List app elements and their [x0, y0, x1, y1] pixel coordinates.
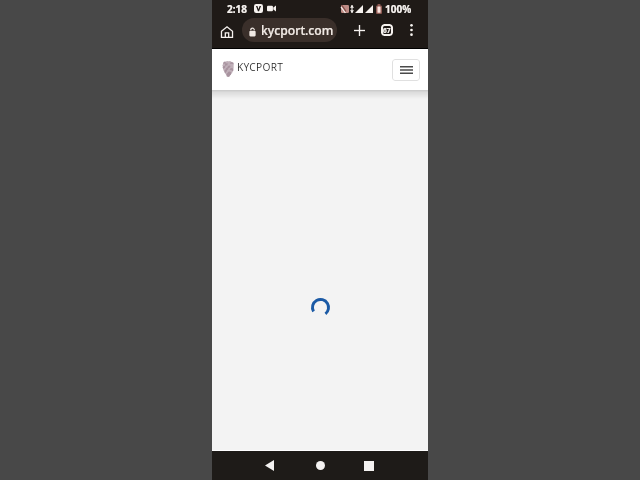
- button[interactable]: Open tabs: [376, 19, 398, 41]
- staticText: KYCPORT: [237, 60, 284, 74]
- button[interactable]: Home page: [219, 15, 234, 45]
- button[interactable]: Home: [307, 451, 333, 480]
- button[interactable]: Recent apps: [356, 451, 382, 480]
- staticText: kycport.com: [261, 22, 334, 39]
- staticText: 2:18: [227, 2, 247, 16]
- button[interactable]: KYCPORT: [223, 62, 284, 76]
- button[interactable]: Back: [256, 451, 282, 480]
- button[interactable]: New tab: [348, 19, 370, 41]
- button[interactable]: More options: [403, 19, 419, 41]
- staticText: 100%: [385, 2, 412, 16]
- staticText: 67: [383, 26, 391, 35]
- button[interactable]: Open navigation menu: [392, 59, 420, 81]
- button[interactable]: kycport.com: [242, 18, 337, 42]
